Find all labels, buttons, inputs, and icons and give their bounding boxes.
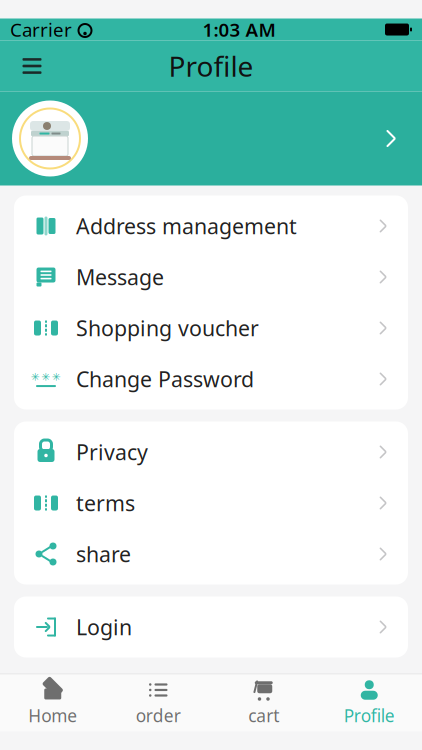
staticText: Shopping voucher <box>76 314 259 342</box>
button[interactable]: share <box>14 528 408 579</box>
button[interactable]: ✳ <box>14 353 408 404</box>
staticText: cart <box>248 704 279 727</box>
button[interactable]: Home <box>0 675 105 731</box>
button[interactable]: cart <box>211 675 316 731</box>
staticText: Change Password <box>76 365 254 393</box>
staticText: ✳ <box>52 371 61 383</box>
button[interactable]: Menu <box>10 44 54 88</box>
button[interactable]: Shopping voucher <box>14 302 408 353</box>
staticText: Privacy <box>76 438 148 466</box>
staticText: ✳ <box>31 371 40 383</box>
staticText: Carrier <box>10 17 72 42</box>
button[interactable]: Profile <box>316 675 422 731</box>
button[interactable]: Message <box>14 251 408 302</box>
staticText: Login <box>76 613 132 641</box>
button[interactable]: Login <box>14 601 408 652</box>
button[interactable]: order <box>105 675 211 731</box>
staticText: Profile <box>168 47 253 85</box>
staticText: terms <box>76 489 135 517</box>
staticText: share <box>76 540 131 568</box>
button[interactable] <box>0 91 422 185</box>
button[interactable]: Privacy <box>14 426 408 477</box>
staticText: Address management <box>76 212 297 240</box>
button[interactable]: terms <box>14 477 408 528</box>
button[interactable]: Address management <box>14 200 408 251</box>
staticText: ✳ <box>41 371 50 383</box>
staticText: Message <box>76 263 164 291</box>
staticText: Profile <box>344 704 395 727</box>
staticText: Home <box>28 704 77 727</box>
staticText: order <box>136 704 181 727</box>
staticText: 1:03 AM <box>202 17 275 42</box>
